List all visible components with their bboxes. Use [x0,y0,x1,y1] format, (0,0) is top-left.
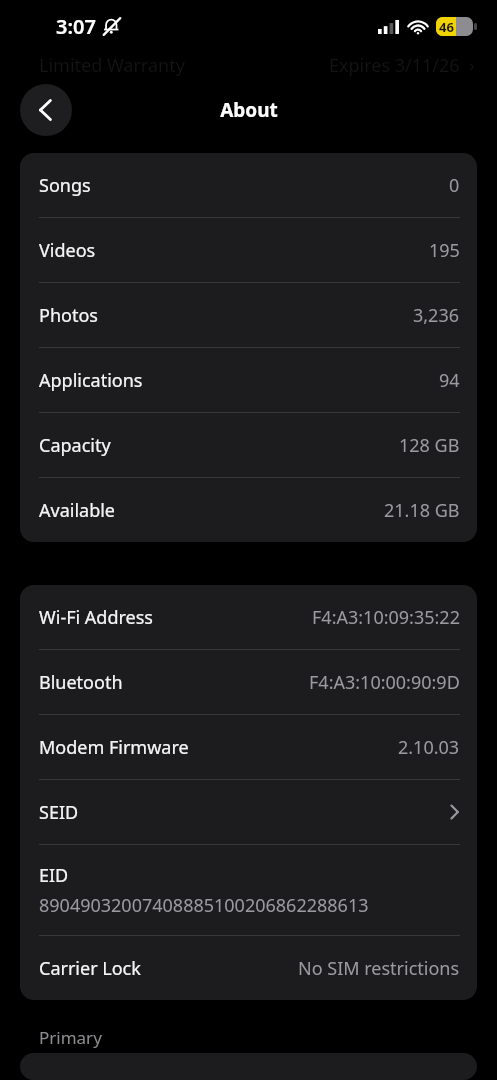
staticText: Limited Warranty [39,53,185,78]
button[interactable]: Available [20,478,477,542]
staticText: Applications [39,368,143,393]
staticText: 0 [449,173,460,198]
staticText: 21.18 GB [384,498,460,523]
staticText: 195 [429,238,460,263]
staticText: Carrier Lock [39,956,141,981]
staticText: Songs [39,173,91,198]
staticText: Wi-Fi Address [39,605,153,630]
staticText: Videos [39,238,96,263]
button[interactable]: Wi-Fi Address [20,585,477,649]
staticText: 3:07 [56,13,96,40]
staticText: 128 GB [399,433,460,458]
staticText: Available [39,498,115,523]
button[interactable] [20,1053,477,1080]
staticText: 46 [439,18,454,36]
staticText: About [220,97,278,123]
staticText: EID [39,863,69,888]
button[interactable]: EID [20,845,477,935]
staticText: Primary [39,1026,102,1049]
staticText: 3,236 [413,303,460,328]
staticText: 89049032007408885100206862288613 [39,893,369,918]
button[interactable]: Back [20,84,72,136]
button[interactable]: Carrier Lock [20,936,477,1000]
staticText: › [469,53,475,78]
staticText: Expires 3/11/26 [329,53,460,78]
staticText: F4:A3:10:09:35:22 [312,605,460,630]
button[interactable]: SEID [20,780,477,844]
staticText: 2.10.03 [398,735,460,760]
staticText: SEID [39,800,79,825]
button[interactable]: Bluetooth [20,650,477,714]
button[interactable]: Modem Firmware [20,715,477,779]
staticText: Capacity [39,433,111,458]
button[interactable]: Songs [20,153,477,217]
button[interactable]: Photos [20,283,477,347]
staticText: Photos [39,303,98,328]
staticText: Modem Firmware [39,735,189,760]
staticText: 94 [439,368,460,393]
button[interactable]: Capacity [20,413,477,477]
button[interactable]: Applications [20,348,477,412]
button[interactable]: Videos [20,218,477,282]
staticText: Bluetooth [39,670,123,695]
staticText: F4:A3:10:00:90:9D [309,670,460,695]
staticText: No SIM restrictions [298,956,460,981]
